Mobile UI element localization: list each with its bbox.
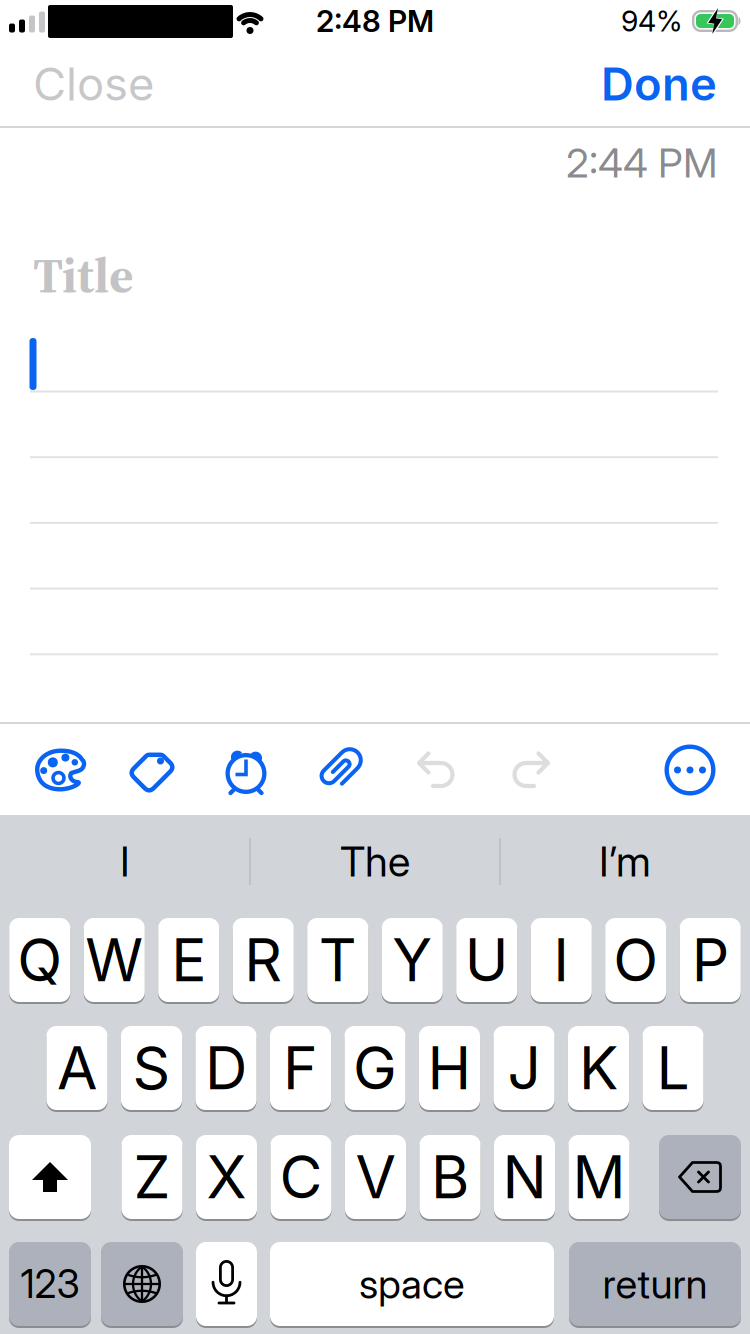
staticText: V [355,1141,395,1212]
button[interactable]: C [270,1135,331,1219]
button[interactable]: K [568,1026,629,1110]
button[interactable]: W [84,918,145,1002]
staticText: return [602,1260,707,1308]
button[interactable]: Undo [416,749,456,791]
staticText: I’m [599,836,651,886]
button[interactable]: Tags [122,740,182,800]
button[interactable]: Dictation [196,1242,257,1326]
button[interactable]: J [493,1026,554,1110]
button[interactable]: U [456,918,517,1002]
button[interactable]: L [642,1026,703,1110]
staticText: Z [133,1141,170,1212]
button[interactable]: Y [382,918,443,1002]
button[interactable]: Done [601,49,750,119]
staticText: E [171,924,206,995]
button[interactable]: O [605,918,666,1002]
button[interactable]: Next keyboard [101,1242,183,1326]
button[interactable]: Q [9,918,70,1002]
staticText: L [656,1032,689,1103]
staticText: T [319,924,357,995]
button[interactable]: G [344,1026,405,1110]
staticText: H [427,1032,471,1103]
button[interactable]: H [419,1026,480,1110]
button[interactable]: Z [121,1135,182,1219]
staticText: B [431,1141,469,1212]
staticText: Title [33,241,134,309]
staticText: Y [392,924,432,995]
button[interactable]: S [121,1026,182,1110]
staticText: A [57,1032,97,1103]
button[interactable]: V [345,1135,406,1219]
staticText: C [279,1141,322,1212]
staticText: D [205,1032,247,1103]
button[interactable]: E [158,918,219,1002]
button[interactable]: I [531,918,592,1002]
staticText: The [340,836,410,886]
button[interactable]: B [419,1135,480,1219]
button[interactable]: space [270,1242,554,1326]
staticText: O [613,924,658,995]
button[interactable]: T [307,918,368,1002]
button[interactable]: F [270,1026,331,1110]
button[interactable]: Redo [511,749,551,791]
staticText: Close [33,57,154,111]
staticText: G [353,1032,397,1103]
button[interactable]: Shift [9,1135,91,1219]
button[interactable]: More [664,744,715,795]
button[interactable]: A [46,1026,107,1110]
staticText: R [244,924,282,995]
button[interactable]: I’m [501,815,749,908]
staticText: 94% [621,4,682,38]
staticText: Done [601,57,717,111]
staticText: N [502,1141,546,1212]
staticText: S [132,1032,170,1103]
staticText: F [283,1032,318,1103]
button[interactable]: Delete [659,1135,741,1219]
button[interactable]: R [233,918,294,1002]
staticText: Q [17,924,62,995]
button[interactable]: X [196,1135,257,1219]
button[interactable]: Reminder [220,744,272,796]
button[interactable]: 123 [9,1242,91,1326]
button[interactable]: Attach [310,740,370,800]
button[interactable]: return [569,1242,741,1326]
staticText: X [206,1141,246,1212]
button[interactable]: Style [35,748,85,791]
button[interactable]: Close [0,49,154,119]
staticText: I [553,924,569,995]
button[interactable]: N [494,1135,555,1219]
staticText: 123 [20,1261,79,1307]
staticText: I [120,836,130,886]
staticText: K [579,1032,618,1103]
staticText: P [692,924,729,995]
button[interactable]: I [1,815,249,908]
button[interactable]: The [251,815,499,908]
staticText: 2:48 PM [316,3,434,39]
staticText: M [572,1141,625,1212]
staticText: W [85,924,143,995]
staticText: space [359,1260,465,1308]
staticText: J [507,1032,540,1103]
button[interactable]: M [568,1135,630,1219]
staticText: 2:44 PM [566,139,717,187]
staticText: U [465,924,509,995]
button[interactable]: P [680,918,741,1002]
button[interactable]: D [195,1026,256,1110]
